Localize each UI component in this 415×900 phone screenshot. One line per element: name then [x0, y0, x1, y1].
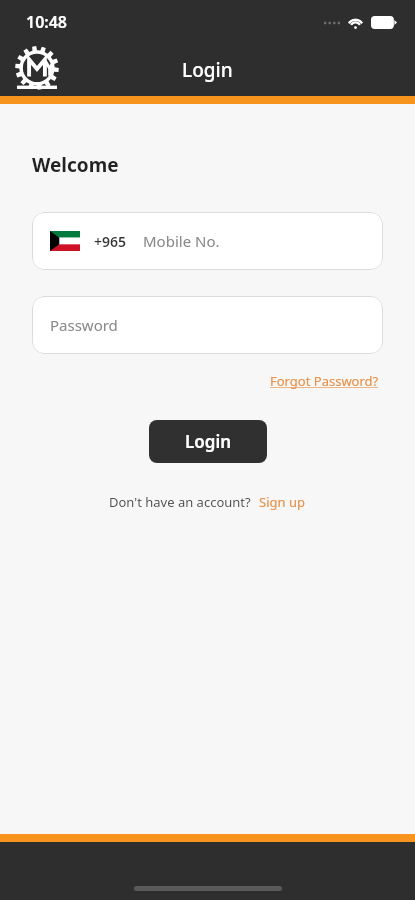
button[interactable]: Login — [149, 420, 267, 463]
staticText: Login — [185, 430, 232, 453]
button[interactable]: Sign up — [257, 491, 307, 513]
staticText: +965 — [94, 232, 127, 251]
staticText: 10:48 — [26, 11, 68, 33]
staticText: Don't have an account? — [109, 493, 251, 511]
button[interactable]: +965 — [32, 212, 383, 270]
button[interactable]: Password — [32, 296, 383, 354]
button[interactable]: App logo — [10, 44, 64, 96]
staticText: Forgot Password? — [270, 372, 379, 390]
staticText: Welcome — [32, 152, 119, 178]
staticText: Mobile No. — [143, 231, 220, 251]
staticText: Password — [50, 315, 118, 335]
button[interactable]: Forgot Password? — [266, 368, 383, 394]
staticText: Login — [182, 57, 233, 83]
staticText: Sign up — [259, 493, 305, 511]
